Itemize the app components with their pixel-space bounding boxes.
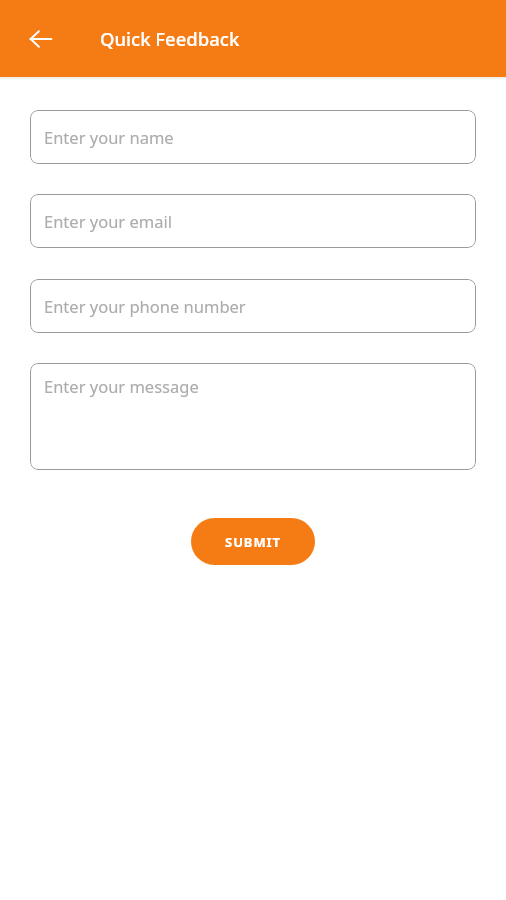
staticText: Enter your phone number	[44, 295, 246, 317]
button[interactable]: Back	[24, 22, 58, 56]
staticText: Enter your email	[44, 210, 172, 232]
button[interactable]: Enter your phone number	[30, 279, 476, 333]
staticText: Enter your message	[44, 375, 199, 397]
button[interactable]: Enter your email	[30, 194, 476, 248]
button[interactable]: Enter your message	[30, 363, 476, 470]
button[interactable]: SUBMIT	[191, 518, 315, 565]
staticText: SUBMIT	[225, 533, 281, 551]
staticText: Quick Feedback	[100, 26, 240, 51]
button[interactable]: Enter your name	[30, 110, 476, 164]
staticText: Enter your name	[44, 126, 174, 148]
